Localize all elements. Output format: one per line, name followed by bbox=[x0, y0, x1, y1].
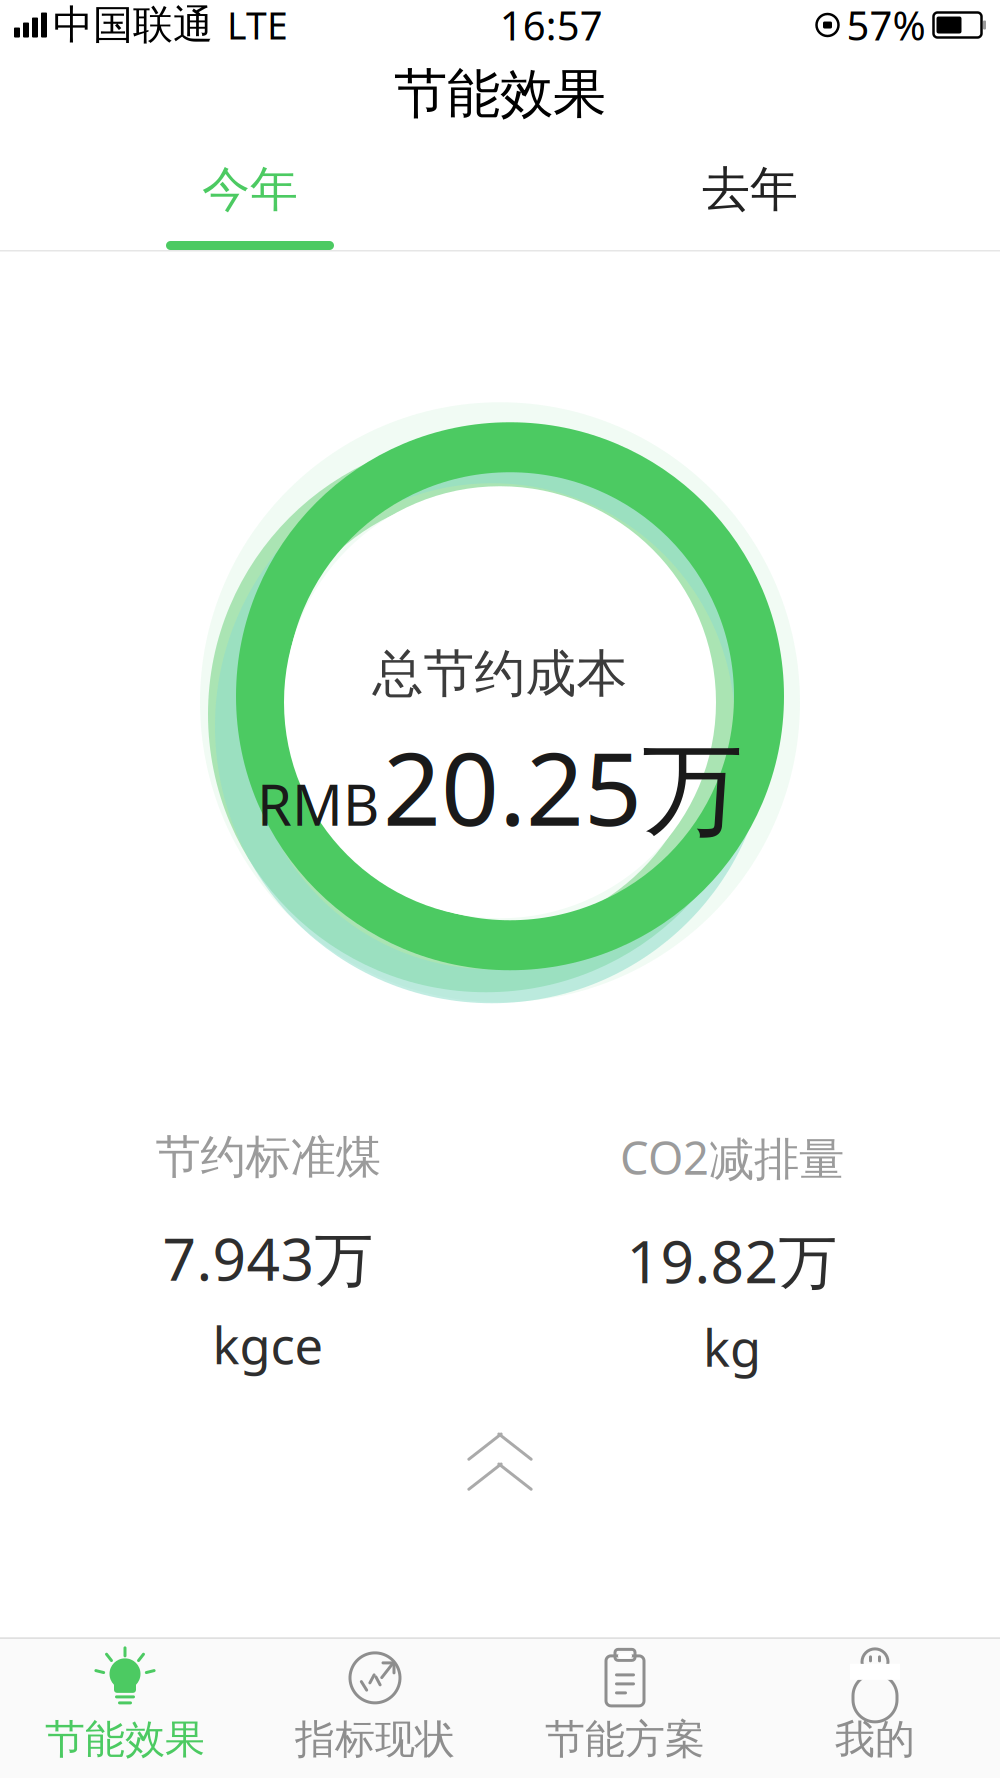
staticText: 19.82万 bbox=[626, 1221, 837, 1299]
staticText: 节约标准煤 bbox=[155, 1129, 380, 1185]
staticText: LTE bbox=[227, 0, 288, 50]
button[interactable]: 指标现状 bbox=[250, 1639, 500, 1778]
button[interactable]: 今年 bbox=[0, 138, 500, 250]
staticText: 20.25万 bbox=[383, 719, 743, 854]
staticText: 节能方案 bbox=[545, 1715, 705, 1764]
staticText: 16:57 bbox=[500, 0, 603, 51]
button[interactable]: 节能方案 bbox=[500, 1639, 750, 1778]
staticText: CO2减排量 bbox=[620, 1127, 844, 1187]
staticText: 总节约成本 bbox=[372, 643, 627, 705]
staticText: 57% bbox=[846, 0, 925, 51]
staticText: 今年 bbox=[202, 160, 298, 219]
staticText: RMB bbox=[257, 767, 379, 841]
button[interactable]: 去年 bbox=[500, 138, 1000, 250]
button[interactable]: 节能效果 bbox=[0, 1639, 250, 1778]
button[interactable]: 我的 bbox=[750, 1639, 1000, 1778]
staticText: 节能效果 bbox=[45, 1715, 205, 1764]
staticText: kg bbox=[703, 1313, 761, 1381]
staticText: 节能效果 bbox=[394, 61, 606, 127]
staticText: 指标现状 bbox=[295, 1715, 455, 1764]
staticText: 去年 bbox=[702, 160, 798, 219]
button[interactable]: Expand bbox=[0, 1381, 1000, 1523]
staticText: 中国联通 bbox=[53, 0, 213, 49]
staticText: kgce bbox=[212, 1311, 323, 1378]
staticText: 我的 bbox=[835, 1715, 915, 1764]
staticText: 7.943万 bbox=[162, 1219, 373, 1297]
